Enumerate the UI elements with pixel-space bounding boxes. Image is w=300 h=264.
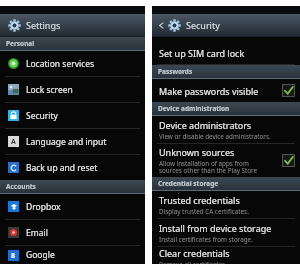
staticText: Unknown sources [159, 146, 235, 158]
staticText: A [11, 137, 16, 147]
staticText: Location services [26, 58, 95, 70]
staticText: Passwords [158, 67, 193, 76]
staticText: Accounts [6, 182, 36, 191]
staticText: Security [26, 110, 58, 122]
staticText: Lock screen [26, 84, 73, 96]
button[interactable]: Email [0, 220, 145, 245]
button[interactable]: Device administrators [152, 116, 300, 143]
staticText: Device administrators [159, 119, 252, 131]
staticText: Set up SIM card lock [159, 47, 245, 59]
staticText: Credential storage [158, 179, 219, 188]
staticText: Settings [26, 19, 61, 31]
staticText: Email [26, 227, 48, 239]
button[interactable]: Lock screen [0, 77, 145, 102]
button[interactable]: Unknown sources [152, 144, 300, 177]
staticText: View or disable device administrators. [159, 132, 271, 141]
button[interactable]: Clear credentials [152, 247, 300, 264]
staticText: Back up and reset [26, 162, 98, 174]
button[interactable]: Location services [0, 51, 145, 76]
staticText: Remove all certificates. [159, 260, 227, 264]
staticText: Google [26, 249, 55, 261]
staticText: Install certificates from storage. [159, 235, 253, 244]
staticText: Dropbox [26, 201, 61, 213]
button[interactable]: Back [152, 14, 300, 36]
staticText: Clear credentials [159, 247, 230, 259]
button[interactable]: Toggle [282, 154, 295, 167]
staticText: Trusted credentials [159, 194, 240, 206]
button[interactable]: A [0, 129, 145, 154]
button[interactable]: Back [156, 20, 166, 30]
staticText: Security [186, 19, 220, 31]
button[interactable]: Set up SIM card lock [152, 41, 300, 64]
staticText: Device administration [158, 104, 230, 113]
button[interactable]: Trusted credentials [152, 191, 300, 218]
button[interactable]: Settings [0, 14, 145, 36]
staticText: Make passwords visible [159, 85, 259, 97]
button[interactable]: Install from device storage [152, 219, 300, 246]
button[interactable]: Make passwords visible [152, 79, 300, 102]
button[interactable]: Back up and reset [0, 155, 145, 180]
staticText: Display trusted CA certificates. [159, 207, 249, 216]
staticText: Allow installation of apps from sources … [159, 159, 258, 175]
staticText: Personal [6, 39, 35, 48]
staticText: 8 [11, 251, 16, 261]
staticText: Install from device storage [159, 222, 272, 234]
button[interactable]: Dropbox [0, 194, 145, 219]
staticText: Language and input [26, 136, 107, 148]
button[interactable]: Security [0, 103, 145, 128]
button[interactable]: 8 [0, 246, 145, 264]
button[interactable]: Toggle [282, 84, 295, 97]
